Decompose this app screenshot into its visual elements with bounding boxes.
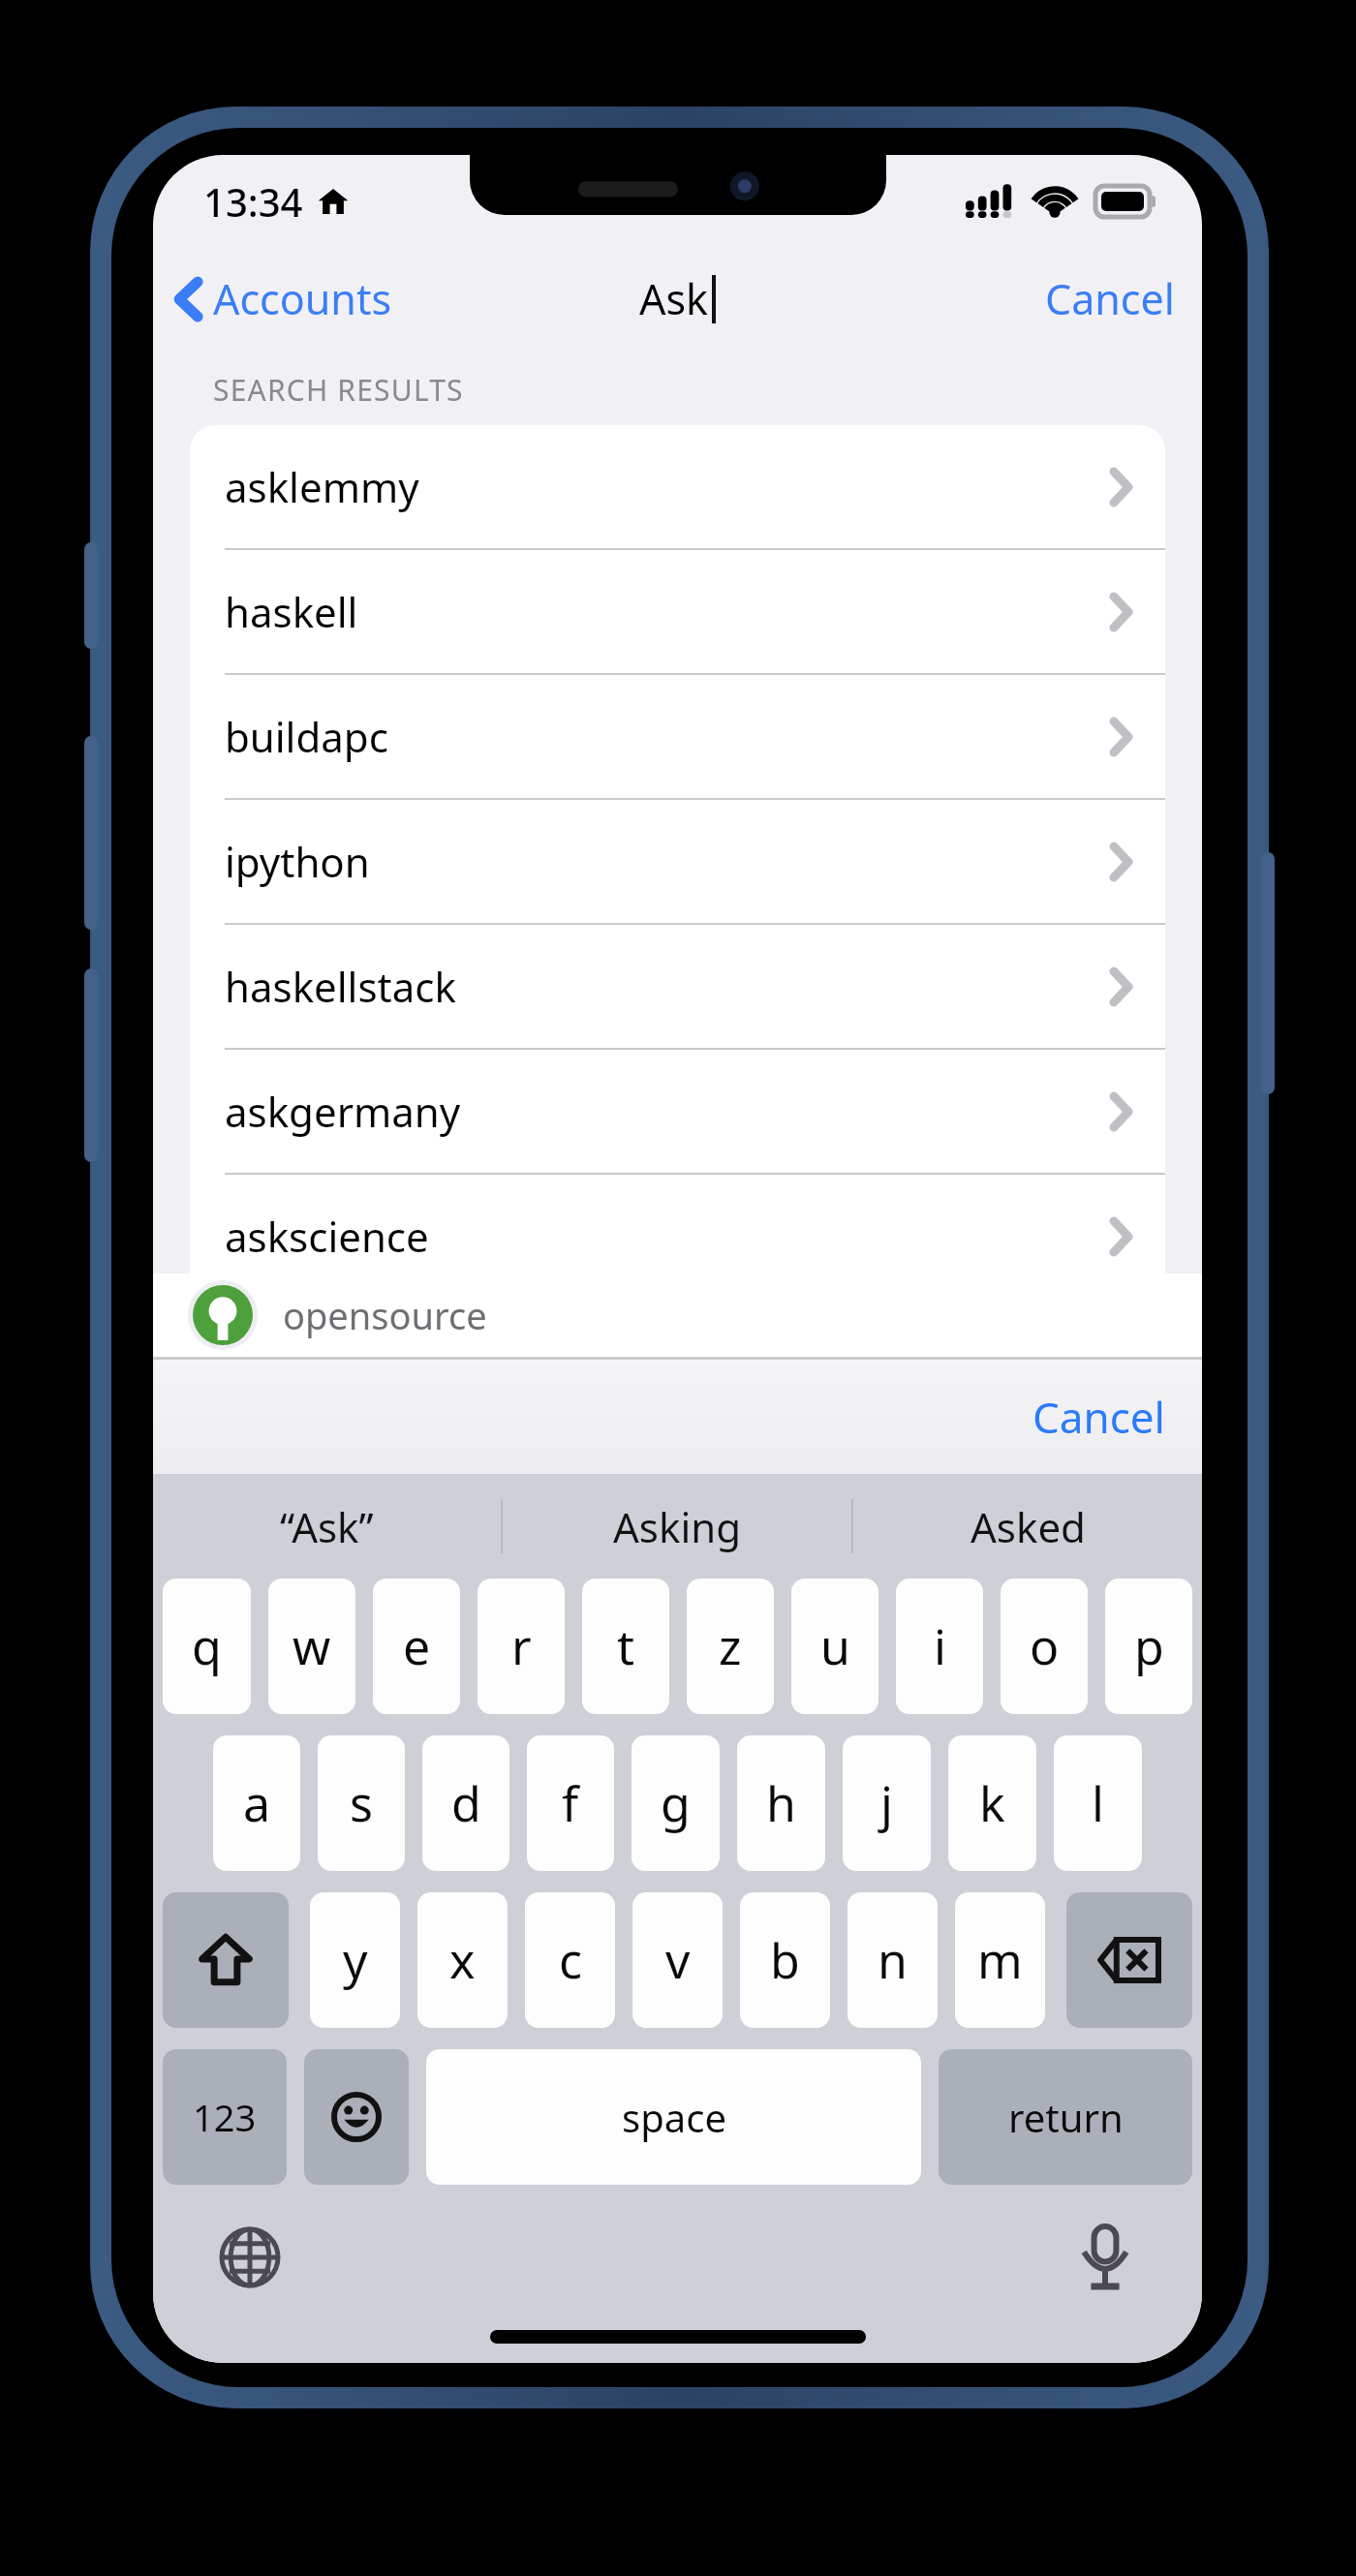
- staticText: Asking: [613, 1499, 742, 1554]
- staticText: Asked: [971, 1499, 1086, 1554]
- button[interactable]: r: [478, 1579, 565, 1714]
- button[interactable]: c: [525, 1892, 615, 2028]
- button[interactable]: Asked: [853, 1474, 1202, 1579]
- staticText: askscience: [225, 1209, 429, 1264]
- button[interactable]: u: [791, 1579, 878, 1714]
- staticText: e: [403, 1613, 431, 1679]
- button[interactable]: n: [847, 1892, 938, 2028]
- button[interactable]: asklemmy: [190, 425, 1165, 548]
- button[interactable]: s: [318, 1735, 405, 1871]
- staticText: k: [979, 1770, 1005, 1836]
- staticText: asklemmy: [225, 459, 419, 514]
- staticText: Cancel: [1032, 1388, 1165, 1446]
- staticText: c: [559, 1927, 582, 1993]
- staticText: b: [770, 1927, 800, 1993]
- staticText: return: [1008, 2091, 1124, 2143]
- staticText: r: [511, 1613, 532, 1679]
- staticText: “Ask”: [280, 1499, 374, 1554]
- button[interactable]: Asking: [503, 1474, 851, 1579]
- staticText: d: [451, 1770, 481, 1836]
- staticText: SEARCH RESULTS: [213, 370, 464, 410]
- button[interactable]: h: [737, 1735, 825, 1871]
- staticText: h: [766, 1770, 796, 1836]
- button[interactable]: q: [163, 1579, 251, 1714]
- button[interactable]: o: [1001, 1579, 1088, 1714]
- staticText: a: [243, 1770, 271, 1836]
- button[interactable]: 123: [163, 2049, 287, 2185]
- button[interactable]: Emoji: [304, 2049, 409, 2185]
- button[interactable]: askgermany: [190, 1050, 1165, 1173]
- button[interactable]: Backspace: [1066, 1892, 1192, 2028]
- button[interactable]: a: [213, 1735, 300, 1871]
- staticText: i: [934, 1613, 946, 1679]
- button[interactable]: t: [582, 1579, 669, 1714]
- button[interactable]: Cancel: [1018, 257, 1202, 341]
- staticText: opensource: [283, 1290, 487, 1340]
- staticText: s: [350, 1770, 373, 1836]
- staticText: askgermany: [225, 1084, 461, 1139]
- button[interactable]: d: [422, 1735, 509, 1871]
- button[interactable]: buildapc: [190, 675, 1165, 798]
- button[interactable]: v: [632, 1892, 723, 2028]
- button[interactable]: Dictation: [1068, 2221, 1142, 2294]
- staticText: haskellstack: [225, 959, 456, 1014]
- button[interactable]: “Ask”: [153, 1474, 501, 1579]
- staticText: f: [562, 1770, 579, 1836]
- staticText: y: [343, 1927, 368, 1993]
- staticText: 123: [193, 2092, 257, 2142]
- staticText: m: [977, 1927, 1023, 1993]
- button[interactable]: j: [843, 1735, 931, 1871]
- button[interactable]: x: [417, 1892, 508, 2028]
- staticText: 13:34: [203, 175, 303, 228]
- button[interactable]: e: [373, 1579, 460, 1714]
- staticText: haskell: [225, 584, 358, 639]
- button[interactable]: m: [955, 1892, 1045, 2028]
- button[interactable]: ipython: [190, 800, 1165, 923]
- button[interactable]: l: [1054, 1735, 1142, 1871]
- button[interactable]: f: [527, 1735, 614, 1871]
- staticText: Accounts: [213, 270, 392, 327]
- staticText: u: [820, 1613, 850, 1679]
- button[interactable]: b: [740, 1892, 830, 2028]
- staticText: g: [661, 1770, 691, 1836]
- button[interactable]: space: [426, 2049, 921, 2185]
- button[interactable]: i: [896, 1579, 983, 1714]
- staticText: x: [449, 1927, 476, 1993]
- button[interactable]: z: [687, 1579, 774, 1714]
- button[interactable]: g: [632, 1735, 720, 1871]
- staticText: buildapc: [225, 709, 388, 764]
- staticText: ipython: [225, 834, 370, 889]
- staticText: v: [665, 1927, 691, 1993]
- staticText: l: [1092, 1770, 1104, 1836]
- button[interactable]: Shift: [163, 1892, 289, 2028]
- button[interactable]: Accounts: [153, 259, 408, 339]
- staticText: z: [719, 1613, 742, 1679]
- staticText: n: [878, 1927, 908, 1993]
- button[interactable]: askscience: [190, 1175, 1165, 1298]
- staticText: Ask: [639, 270, 709, 327]
- button[interactable]: p: [1105, 1579, 1192, 1714]
- button[interactable]: Change keyboard language: [213, 2221, 287, 2294]
- button[interactable]: w: [268, 1579, 355, 1714]
- staticText: space: [622, 2091, 726, 2143]
- staticText: q: [192, 1613, 222, 1679]
- button[interactable]: haskellstack: [190, 925, 1165, 1048]
- staticText: t: [617, 1613, 635, 1679]
- staticText: j: [880, 1770, 893, 1836]
- staticText: p: [1134, 1613, 1164, 1679]
- staticText: Cancel: [1045, 270, 1175, 327]
- button[interactable]: haskell: [190, 550, 1165, 673]
- button[interactable]: return: [939, 2049, 1192, 2185]
- staticText: w: [293, 1613, 331, 1679]
- button[interactable]: y: [310, 1892, 400, 2028]
- button[interactable]: Cancel: [996, 1372, 1202, 1461]
- staticText: o: [1030, 1613, 1060, 1679]
- button[interactable]: k: [948, 1735, 1036, 1871]
